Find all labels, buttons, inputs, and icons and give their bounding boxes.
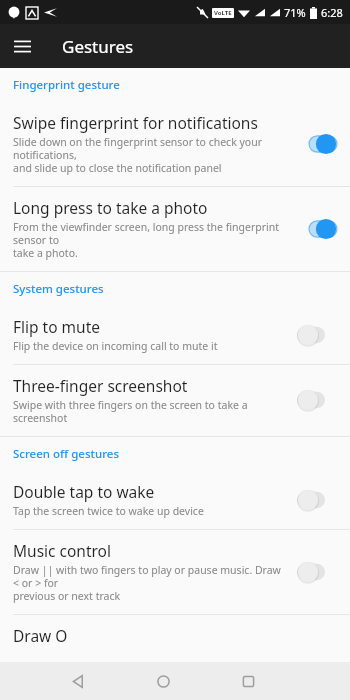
staticText: Music control bbox=[13, 540, 111, 561]
button[interactable]: Toggle on bbox=[297, 133, 337, 155]
staticText: Slide down on the fingerprint sensor to … bbox=[13, 135, 289, 175]
button[interactable]: Flip to mute bbox=[0, 306, 350, 364]
button[interactable]: Three-finger screenshot bbox=[0, 365, 350, 436]
button[interactable]: Recent apps bbox=[229, 662, 267, 700]
staticText: 6:28 bbox=[321, 5, 343, 20]
button[interactable]: Toggle off bbox=[297, 389, 337, 411]
staticText: Draw O bbox=[13, 625, 68, 646]
button[interactable]: Toggle off bbox=[297, 489, 337, 511]
staticText: From the viewfinder screen, long press t… bbox=[13, 220, 289, 260]
button[interactable]: Home bbox=[144, 662, 182, 700]
button[interactable]: Toggle off bbox=[297, 561, 337, 583]
staticText: Flip the device on incoming call to mute… bbox=[13, 339, 218, 353]
staticText: Fingerprint gesture bbox=[13, 77, 120, 93]
button[interactable]: Toggle off bbox=[297, 324, 337, 346]
button[interactable]: Music control bbox=[0, 530, 350, 614]
button[interactable]: Long press to take a photo bbox=[0, 187, 350, 271]
staticText: Tap the screen twice to wake up device bbox=[13, 504, 204, 518]
button[interactable]: Draw O bbox=[0, 615, 350, 662]
button[interactable]: Swipe fingerprint for notifications bbox=[0, 102, 350, 186]
staticText: Long press to take a photo bbox=[13, 197, 208, 218]
staticText: Gestures bbox=[62, 35, 134, 58]
button[interactable]: Toggle on bbox=[297, 218, 337, 240]
button[interactable]: Open navigation menu bbox=[0, 24, 44, 68]
staticText: Swipe fingerprint for notifications bbox=[13, 112, 258, 133]
staticText: Flip to mute bbox=[13, 316, 101, 337]
staticText: Double tap to wake bbox=[13, 481, 155, 502]
staticText: VoLTE bbox=[214, 9, 232, 17]
staticText: System gestures bbox=[13, 281, 104, 297]
button[interactable]: Back bbox=[59, 662, 97, 700]
staticText: Three-finger screenshot bbox=[13, 375, 188, 396]
staticText: Screen off gestures bbox=[13, 446, 119, 462]
staticText: Draw || with two fingers to play or paus… bbox=[13, 563, 289, 603]
button[interactable]: Double tap to wake bbox=[0, 471, 350, 529]
staticText: 71% bbox=[284, 5, 306, 20]
staticText: Swipe with three fingers on the screen t… bbox=[13, 398, 289, 425]
